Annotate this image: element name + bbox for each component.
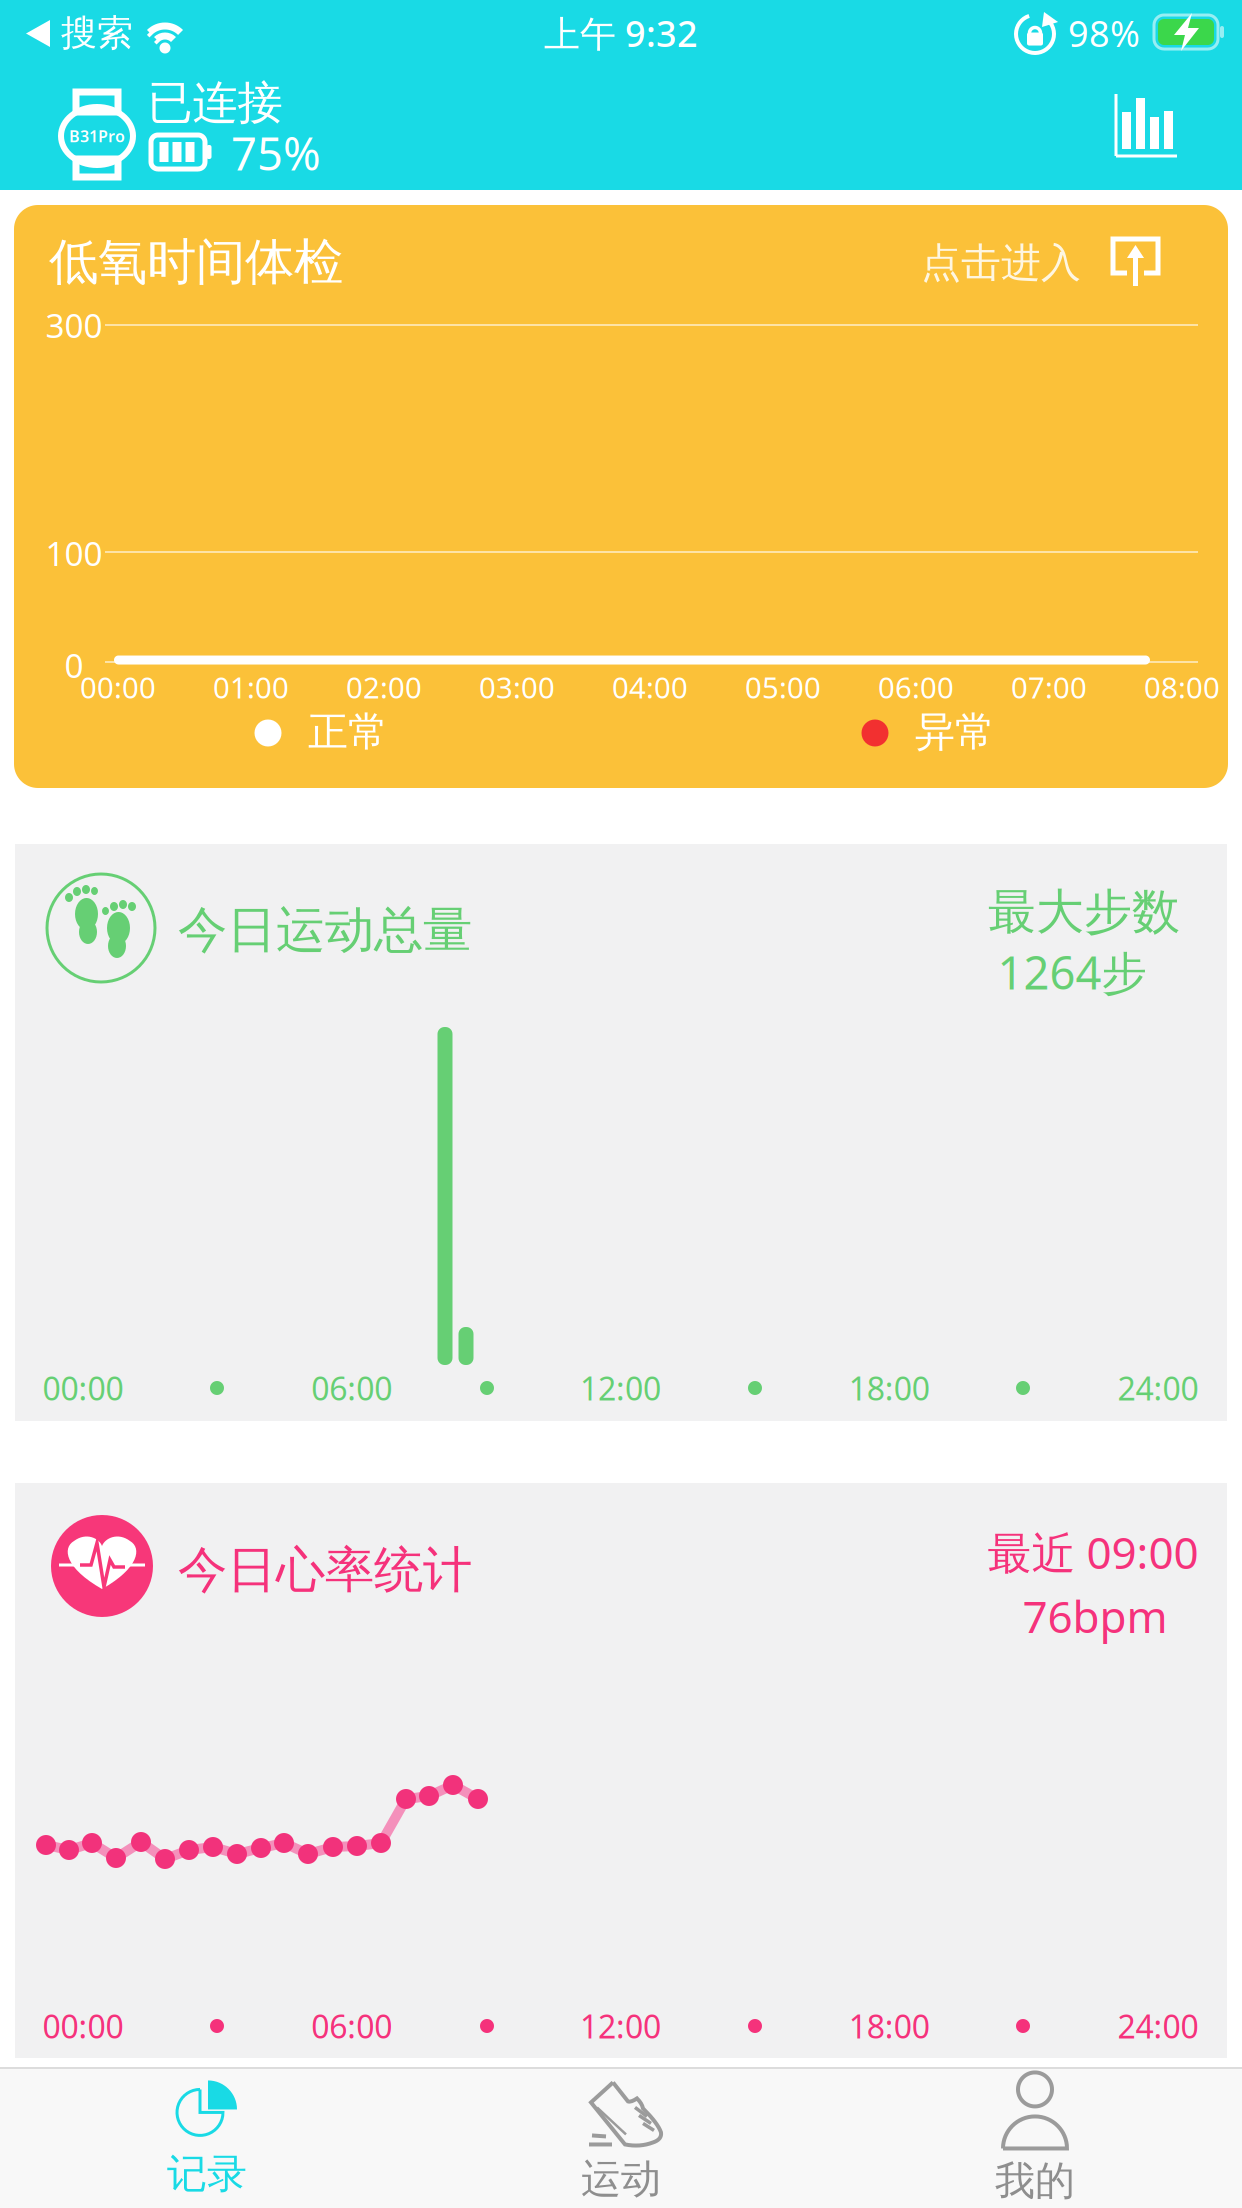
staticText: 12:00 [580, 2005, 661, 2047]
staticText: 12:00 [580, 1367, 661, 1409]
staticText: 05:00 [745, 667, 821, 706]
staticText: 06:00 [878, 667, 954, 706]
staticText: 08:00 [1144, 667, 1220, 706]
staticText: 异常 [915, 707, 995, 756]
staticText: 04:00 [612, 667, 688, 706]
button[interactable]: B31Pro [0, 0, 420, 190]
staticText: 100 [45, 531, 102, 575]
staticText: 搜索 [61, 11, 133, 55]
staticText: 24:00 [1117, 1367, 1198, 1409]
staticText: 00:00 [42, 2005, 123, 2047]
staticText: 最大步数 [988, 882, 1180, 941]
staticText: 00:00 [80, 667, 156, 706]
staticText: B31Pro [69, 125, 125, 147]
staticText: 低氧时间体检 [49, 232, 343, 292]
staticText: 00:00 [42, 1367, 123, 1409]
staticText: 02:00 [346, 667, 422, 706]
staticText: 记录 [167, 2149, 247, 2198]
staticText: 18:00 [849, 1367, 930, 1409]
staticText: 点击进入 [921, 238, 1081, 287]
button[interactable]: 低氧时间体检 [14, 205, 1228, 788]
button[interactable] [1114, 94, 1180, 158]
staticText: 300 [45, 303, 102, 347]
button[interactable]: 我的 [885, 2069, 1185, 2208]
staticText: 今日运动总量 [178, 900, 472, 960]
staticText: 18:00 [849, 2005, 930, 2047]
staticText: 我的 [995, 2156, 1075, 2205]
staticText: 98% [1068, 9, 1140, 57]
staticText: 上午 9:32 [544, 9, 698, 57]
staticText: 已连接 [147, 75, 282, 131]
staticText: 06:00 [311, 1367, 392, 1409]
staticText: 75% [231, 123, 321, 183]
staticText: 最近 09:00 [987, 1523, 1198, 1581]
staticText: 01:00 [213, 667, 289, 706]
staticText: 24:00 [1117, 2005, 1198, 2047]
staticText: 0 [64, 643, 83, 687]
button[interactable]: 记录 [57, 2069, 357, 2208]
staticText: 今日心率统计 [178, 1540, 472, 1600]
staticText: 1264步 [997, 942, 1146, 1002]
staticText: 正常 [308, 707, 388, 756]
staticText: 76bpm [1022, 1587, 1167, 1645]
button[interactable]: 运动 [471, 2069, 771, 2208]
staticText: 07:00 [1011, 667, 1087, 706]
button[interactable]: 点击进入 [921, 237, 1161, 289]
staticText: 运动 [581, 2154, 661, 2203]
staticText: 03:00 [479, 667, 555, 706]
staticText: 06:00 [311, 2005, 392, 2047]
